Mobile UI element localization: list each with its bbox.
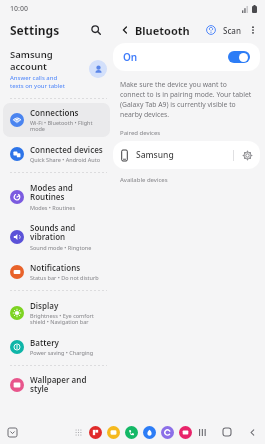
button[interactable]: Recents	[196, 426, 208, 438]
button[interactable]: Connections	[3, 103, 110, 137]
button[interactable]: App	[107, 426, 120, 439]
button[interactable]: Recent apps	[5, 425, 19, 439]
staticText: On	[123, 50, 138, 64]
button[interactable]: Connected devices	[3, 140, 110, 167]
button[interactable]: Home	[221, 426, 233, 438]
staticText: Power saving • Charging	[30, 349, 94, 356]
button[interactable]: On	[113, 43, 260, 71]
staticText: Make sure the device you want to connect…	[120, 80, 253, 119]
button[interactable]: Back	[246, 426, 258, 438]
button[interactable]: Samsung account	[0, 43, 113, 95]
staticText: Battery	[30, 337, 59, 348]
staticText: Scan	[223, 25, 241, 36]
button[interactable]: More options	[246, 23, 260, 37]
staticText: Brightness • Eye comfort shield • Naviga…	[30, 312, 94, 326]
staticText: Connected devices	[30, 144, 103, 155]
staticText: Sound mode • Ringtone	[30, 244, 92, 251]
button[interactable]: Help	[203, 22, 219, 38]
button[interactable]: App	[89, 426, 102, 439]
button[interactable]: Back	[117, 22, 133, 38]
staticText: Samsung account	[10, 48, 53, 72]
button[interactable]: Display	[3, 296, 110, 330]
button[interactable]: App	[125, 426, 138, 439]
staticText: Display	[30, 300, 59, 311]
staticText: Settings	[10, 22, 60, 38]
staticText: Wallpaper and style	[30, 374, 106, 395]
button[interactable]: Device settings	[240, 148, 254, 162]
staticText: Quick Share • Android Auto	[30, 156, 101, 163]
staticText: Modes • Routines	[30, 204, 76, 211]
button[interactable]: Scan	[221, 22, 243, 39]
button[interactable]: Search	[87, 21, 105, 39]
staticText: Status bar • Do not disturb	[30, 274, 99, 281]
button[interactable]: Apps	[73, 427, 84, 438]
button[interactable]: App	[179, 426, 192, 439]
staticText: Wi-Fi • Bluetooth • Flight mode	[30, 119, 93, 133]
staticText: Available devices	[120, 176, 168, 184]
staticText: Notifications	[30, 262, 81, 273]
staticText: Answer calls and texts on your tablet	[10, 74, 65, 90]
staticText: Bluetooth	[135, 23, 190, 38]
staticText: Connections	[30, 107, 79, 118]
button[interactable]: Samsung	[113, 141, 260, 169]
button[interactable]: App	[143, 426, 156, 439]
staticText: Sounds and vibration	[30, 222, 76, 243]
button[interactable]: Battery	[3, 333, 110, 360]
staticText: 10:00	[10, 4, 28, 14]
button[interactable]: Notifications	[3, 258, 110, 285]
button[interactable]: Sounds and vibration	[3, 218, 110, 255]
staticText: Paired devices	[120, 129, 161, 137]
button[interactable]: Modes and Routines	[3, 178, 110, 215]
staticText: Samsung	[136, 149, 174, 161]
staticText: Modes and Routines	[30, 182, 106, 203]
button[interactable]: Wallpaper and style	[3, 370, 110, 399]
button[interactable]: App	[161, 426, 174, 439]
